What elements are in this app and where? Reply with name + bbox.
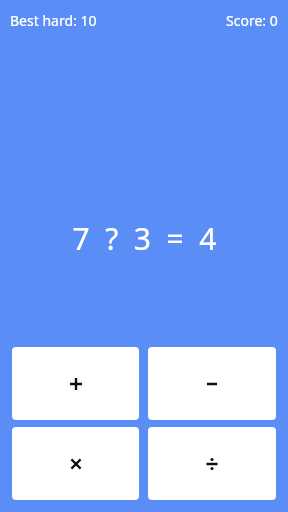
staticText: Score: 0 [226, 11, 278, 30]
button[interactable]: Plus [12, 347, 139, 420]
staticText: Best hard: 10 [10, 11, 97, 30]
staticText: 7 ? 3 = 4 [72, 218, 217, 259]
button[interactable]: Divide [148, 427, 276, 500]
button[interactable]: Minus [148, 347, 276, 420]
button[interactable]: Multiply [12, 427, 139, 500]
